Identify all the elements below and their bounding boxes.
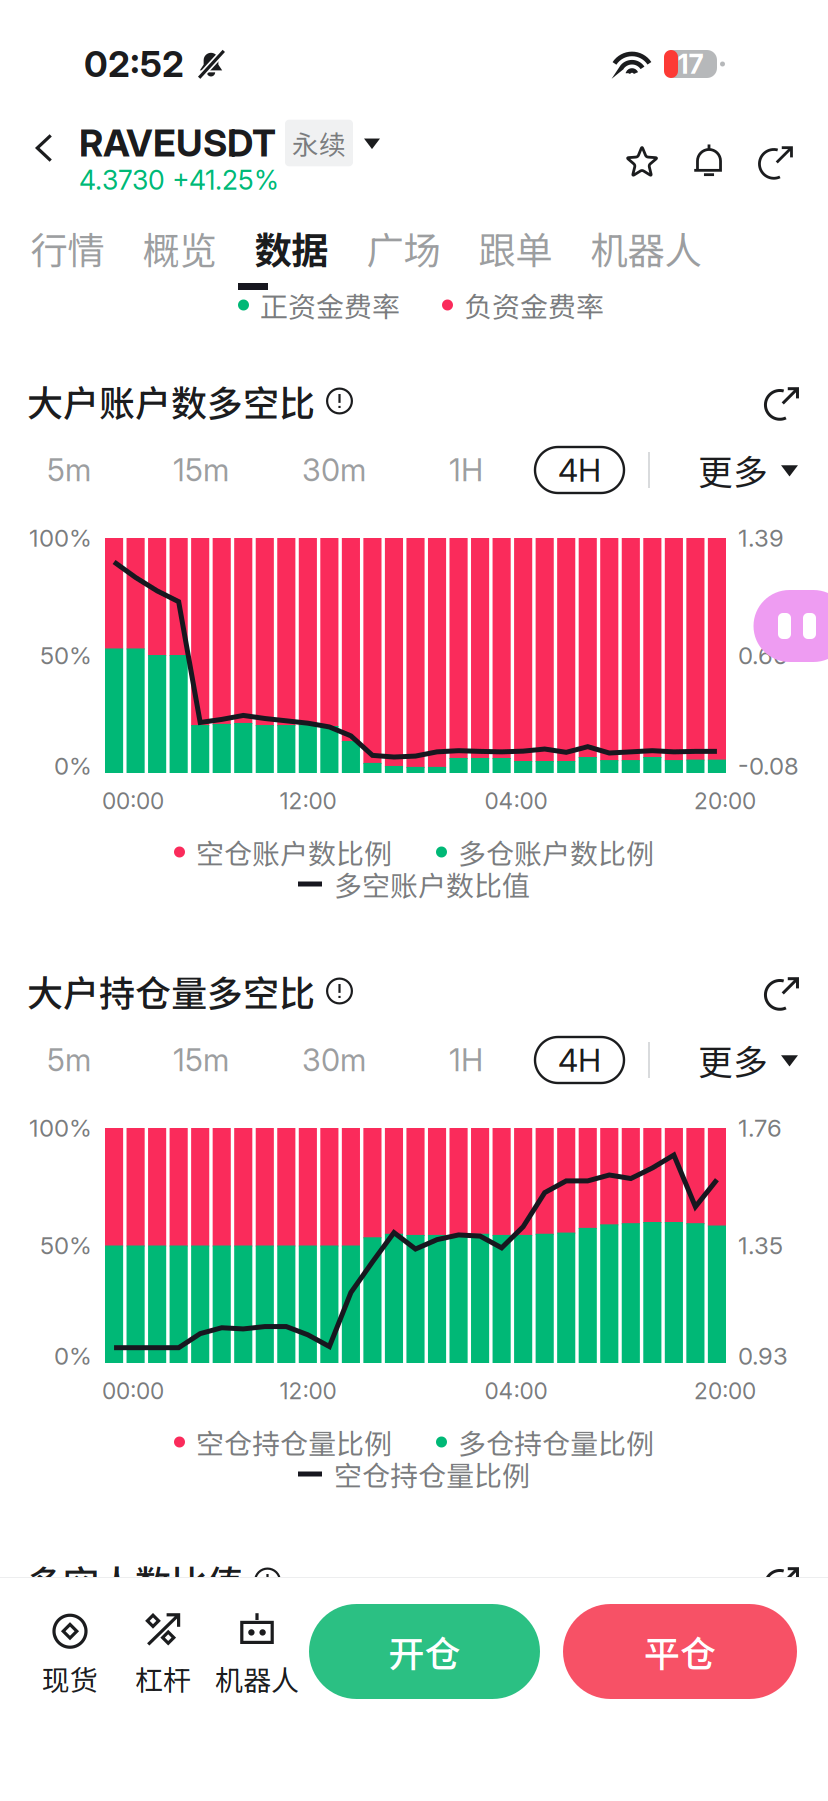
staticText: 杠杆 [135, 1658, 191, 1699]
button[interactable]: 4H [535, 1037, 624, 1083]
staticText: 数据 [254, 221, 328, 275]
staticText: 15m [173, 1041, 229, 1078]
staticText: 平仓 [644, 1625, 716, 1677]
staticText: 1.76 [738, 1113, 782, 1142]
button[interactable]: Price alerts [684, 136, 734, 186]
staticText: 概览 [142, 221, 216, 275]
button[interactable]: 15m [146, 441, 256, 499]
staticText: 1.35 [738, 1231, 783, 1260]
button[interactable]: Back [14, 118, 74, 178]
button[interactable]: 4H [535, 447, 624, 493]
staticText: 50% [40, 1231, 92, 1260]
button[interactable]: Share [751, 136, 801, 186]
button[interactable]: 数据 [235, 222, 347, 274]
staticText: 广场 [366, 221, 440, 275]
staticText: 0.93 [738, 1341, 788, 1370]
staticText: 12:00 [279, 787, 336, 815]
button[interactable]: 机器人 [571, 222, 720, 274]
button[interactable]: Add to favourites [617, 136, 667, 186]
staticText: 空仓持仓量比例 [196, 1422, 392, 1462]
staticText: 1H [449, 451, 483, 488]
button[interactable]: 30m [279, 1031, 389, 1089]
staticText: 17 [677, 48, 703, 80]
staticText: 0% [54, 751, 92, 780]
staticText: 多空人数比值 [27, 1555, 243, 1607]
staticText: 20:00 [694, 787, 756, 815]
staticText: 更多 [698, 445, 768, 495]
button[interactable]: 机器人 [202, 1613, 312, 1697]
button[interactable]: 概览 [123, 222, 235, 274]
button[interactable]: 永续 [276, 120, 380, 166]
staticText: 更多 [698, 1035, 768, 1085]
button[interactable]: 5m [14, 1031, 124, 1089]
staticText: 空仓账户数比例 [196, 832, 392, 872]
staticText: 100% [29, 1113, 92, 1142]
staticText: 多仓账户数比例 [458, 832, 654, 872]
staticText: 多仓持仓量比例 [458, 1422, 654, 1462]
staticText: 多空账户数比值 [334, 864, 530, 904]
staticText: -0.08 [738, 751, 799, 780]
staticText: 4.3730 +41.25% [79, 164, 279, 196]
button[interactable]: Expand chart [756, 1556, 808, 1608]
staticText: 1.39 [738, 523, 784, 552]
staticText: 02:52 [84, 42, 184, 86]
staticText: 20:00 [694, 1377, 756, 1405]
button[interactable]: Expand chart [756, 966, 808, 1018]
staticText: 00:00 [102, 1377, 164, 1405]
staticText: 04:00 [484, 787, 547, 815]
staticText: 开仓 [388, 1625, 460, 1677]
staticText: 正资金费率 [260, 285, 400, 325]
button[interactable]: 1H [411, 1031, 521, 1089]
staticText: 100% [29, 523, 92, 552]
staticText: 机器人 [590, 221, 701, 275]
staticText: 大户账户数多空比 [27, 375, 315, 427]
staticText: 1H [449, 1041, 483, 1078]
button[interactable]: 跟单 [459, 222, 571, 274]
staticText: 4H [558, 1041, 601, 1079]
staticText: 15m [173, 451, 229, 488]
staticText: 永续 [292, 124, 346, 162]
button[interactable]: 更多 [700, 1033, 804, 1087]
staticText: 5m [47, 1041, 91, 1078]
staticText: 现货 [42, 1658, 98, 1699]
button[interactable]: 5m [14, 441, 124, 499]
staticText: 12:00 [279, 1377, 336, 1405]
staticText: 大户持仓量多空比 [27, 965, 315, 1017]
staticText: 0.66 [738, 641, 788, 670]
button[interactable]: 行情 [11, 222, 123, 274]
staticText: 4H [558, 451, 601, 489]
staticText: 空仓持仓量比例 [334, 1454, 530, 1494]
button[interactable]: 广场 [347, 222, 459, 274]
staticText: 行情 [30, 221, 104, 275]
button[interactable]: 15m [146, 1031, 256, 1089]
staticText: RAVEUSDT [79, 120, 276, 166]
staticText: 5m [47, 451, 91, 488]
button[interactable]: 开仓 [309, 1604, 540, 1699]
button[interactable]: 现货 [15, 1613, 125, 1697]
button[interactable]: 30m [279, 441, 389, 499]
staticText: 50% [40, 641, 92, 670]
button[interactable]: 平仓 [563, 1604, 797, 1699]
button[interactable]: 1H [411, 441, 521, 499]
button[interactable]: 杠杆 [108, 1613, 218, 1697]
staticText: 机器人 [215, 1658, 299, 1699]
staticText: 04:00 [484, 1377, 547, 1405]
button[interactable]: 更多 [700, 443, 804, 497]
staticText: 0% [54, 1341, 92, 1370]
button[interactable]: Expand chart [756, 376, 808, 428]
button[interactable]: AI assistant [753, 590, 828, 662]
staticText: 00:00 [102, 787, 164, 815]
staticText: 跟单 [478, 221, 552, 275]
staticText: 30m [302, 451, 366, 488]
staticText: 负资金费率 [464, 285, 604, 325]
staticText: 30m [302, 1041, 366, 1078]
